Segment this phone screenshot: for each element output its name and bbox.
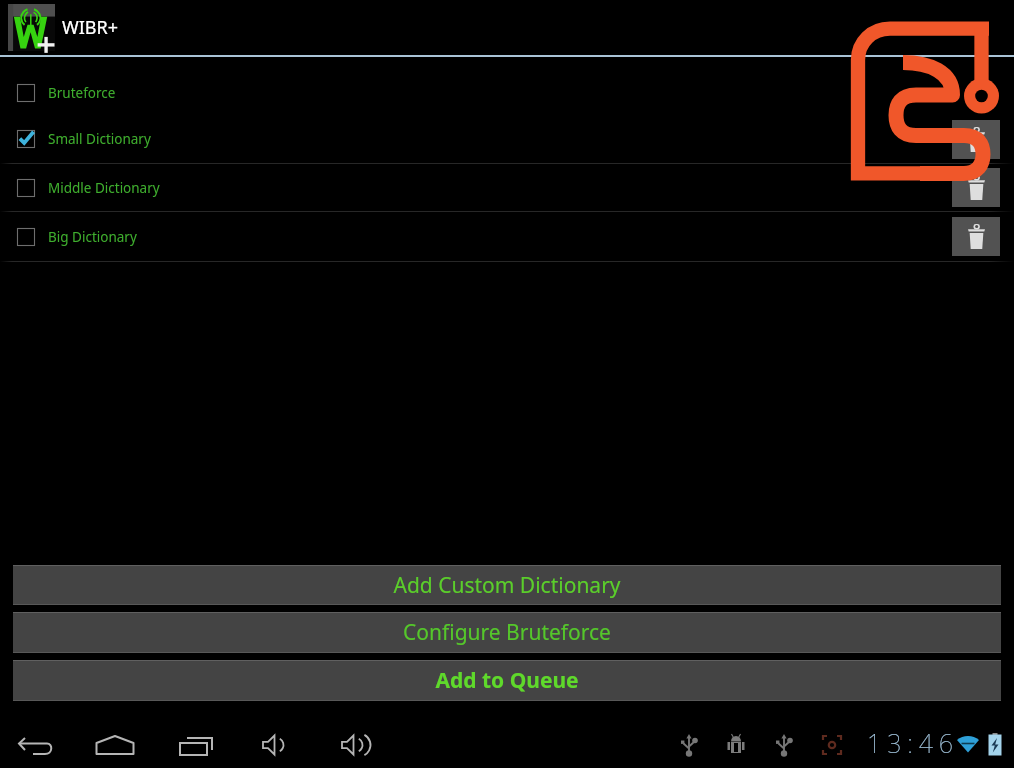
staticText: Add to Queue xyxy=(435,666,579,695)
button[interactable]: Small Dictionary xyxy=(0,115,1014,163)
button[interactable]: Delete xyxy=(952,217,1000,256)
button[interactable]: Big Dictionary xyxy=(0,212,1014,261)
button[interactable]: Volume down xyxy=(253,721,297,765)
button[interactable]: Delete xyxy=(952,168,1000,207)
button[interactable]: Volume up xyxy=(333,721,377,765)
staticText: Bruteforce xyxy=(48,84,116,102)
button[interactable]: Delete xyxy=(952,120,1000,159)
button[interactable]: Bruteforce xyxy=(0,71,1014,115)
button[interactable]: Add to Queue xyxy=(13,660,1001,701)
staticText: Middle Dictionary xyxy=(48,179,160,197)
staticText: 13:46 xyxy=(867,726,960,760)
staticText: Small Dictionary xyxy=(48,130,151,148)
staticText: WIBR+ xyxy=(62,15,119,40)
staticText: Add Custom Dictionary xyxy=(393,571,621,600)
button[interactable]: Configure Bruteforce xyxy=(13,612,1001,653)
button[interactable]: Add Custom Dictionary xyxy=(13,565,1001,605)
button[interactable]: Middle Dictionary xyxy=(0,164,1014,211)
button[interactable]: Home xyxy=(93,721,137,765)
button[interactable]: Back xyxy=(13,721,57,765)
button[interactable]: Recent apps xyxy=(176,721,220,765)
staticText: Big Dictionary xyxy=(48,228,137,246)
staticText: Configure Bruteforce xyxy=(403,618,611,647)
